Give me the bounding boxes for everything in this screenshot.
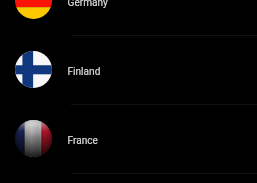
button[interactable]: France bbox=[0, 104, 257, 173]
button[interactable]: Finland bbox=[0, 35, 257, 104]
staticText: Germany bbox=[67, 0, 108, 9]
button[interactable]: Greece bbox=[0, 173, 257, 183]
staticText: Finland bbox=[67, 66, 100, 78]
staticText: France bbox=[67, 135, 98, 147]
button[interactable]: Germany bbox=[0, 0, 257, 35]
